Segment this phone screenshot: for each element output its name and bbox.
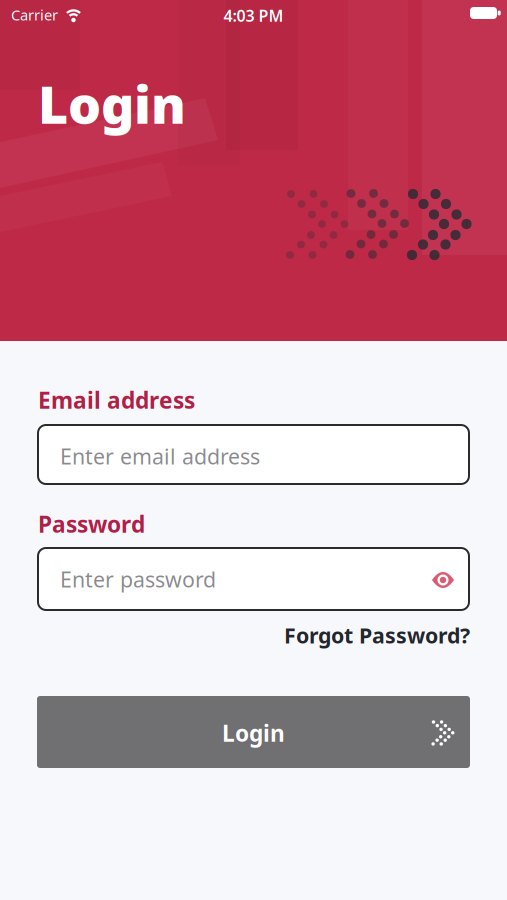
- button[interactable]: Enter password: [38, 548, 469, 610]
- staticText: Login: [222, 718, 285, 748]
- button[interactable]: Enter email address: [38, 425, 469, 484]
- staticText: Forgot Password?: [284, 621, 470, 649]
- staticText: Email address: [38, 385, 195, 415]
- staticText: Enter email address: [60, 442, 260, 470]
- staticText: Enter password: [60, 565, 216, 593]
- staticText: Carrier: [11, 5, 58, 24]
- button[interactable]: Show password: [421, 568, 465, 592]
- button[interactable]: Login: [37, 696, 470, 768]
- button[interactable]: Forgot Password?: [284, 621, 470, 649]
- staticText: 4:03 PM: [223, 5, 283, 26]
- staticText: Login: [38, 69, 186, 138]
- staticText: Password: [38, 509, 145, 539]
